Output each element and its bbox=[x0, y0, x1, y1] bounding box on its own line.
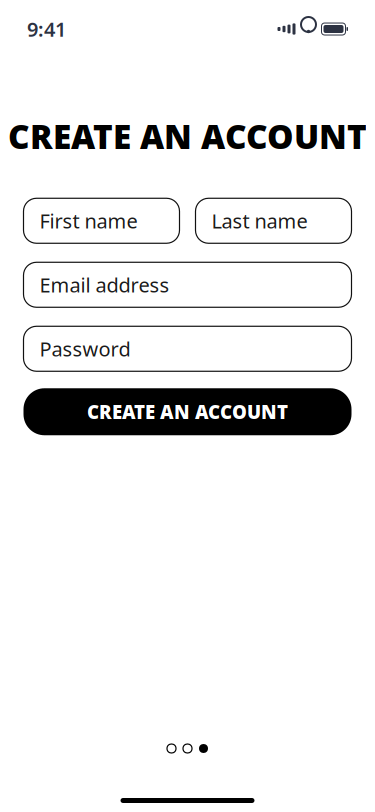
staticText: Password bbox=[39, 335, 130, 362]
staticText: CREATE AN ACCOUNT bbox=[8, 114, 367, 158]
staticText: Last name bbox=[211, 207, 307, 234]
staticText: CREATE AN ACCOUNT bbox=[87, 399, 288, 424]
staticText: Email address bbox=[39, 271, 169, 298]
staticText: 9:41 bbox=[27, 16, 66, 42]
staticText: First name bbox=[39, 207, 137, 234]
button[interactable]: CREATE AN ACCOUNT bbox=[23, 388, 351, 435]
